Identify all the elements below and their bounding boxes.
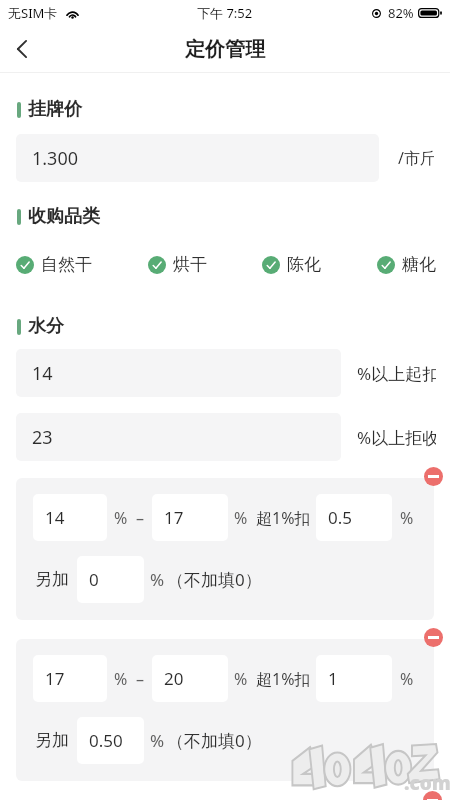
staticText: %	[234, 668, 248, 690]
staticText: （不加填0）	[167, 568, 262, 591]
staticText: 下午 7:52	[197, 4, 253, 22]
staticText: 超1%扣	[256, 668, 311, 690]
staticText: %	[150, 568, 165, 591]
staticText: 82%	[388, 4, 414, 22]
staticText: 另加	[35, 569, 69, 590]
staticText: 水分	[28, 315, 64, 338]
button[interactable]: Remove rule	[423, 791, 442, 800]
staticText: 23	[32, 425, 53, 450]
button[interactable]: 14	[16, 349, 341, 397]
button[interactable]: 0	[77, 556, 144, 603]
staticText: %以上起扣	[357, 362, 436, 385]
staticText: %	[400, 507, 414, 529]
staticText: 收购品类	[28, 205, 100, 228]
button[interactable]: 糖化	[377, 254, 436, 275]
button[interactable]: 17	[33, 655, 107, 702]
button[interactable]: 23	[16, 413, 341, 461]
button[interactable]: 14	[33, 494, 107, 541]
button[interactable]: 20	[152, 655, 228, 702]
button[interactable]: Back	[0, 26, 44, 72]
staticText: 0	[89, 568, 99, 591]
staticText: 超1%扣	[256, 507, 311, 529]
staticText: %以上拒收	[357, 426, 436, 449]
staticText: 陈化	[287, 254, 321, 275]
staticText: %	[400, 668, 414, 690]
button[interactable]: 0.5	[316, 494, 392, 541]
button[interactable]: 1	[316, 655, 392, 702]
staticText: 定价管理	[185, 37, 265, 62]
staticText: 20	[164, 667, 184, 690]
button[interactable]: 陈化	[262, 254, 321, 275]
button[interactable]: Remove rule	[424, 628, 443, 647]
staticText: 无SIM卡	[8, 4, 58, 22]
staticText: 自然干	[41, 254, 92, 275]
staticText: 另加	[35, 730, 69, 751]
button[interactable]: 烘干	[148, 254, 207, 275]
staticText: %	[234, 507, 248, 529]
staticText: /市斤	[398, 147, 434, 169]
staticText: 17	[45, 667, 65, 690]
staticText: %	[114, 668, 128, 690]
staticText: 14	[32, 361, 53, 386]
staticText: （不加填0）	[167, 729, 262, 752]
staticText: 0.5	[328, 506, 353, 529]
staticText: %	[150, 729, 165, 752]
button[interactable]: 17	[152, 494, 228, 541]
staticText: 1	[328, 667, 338, 690]
button[interactable]: 0.50	[77, 717, 144, 764]
staticText: 0.50	[89, 729, 123, 752]
staticText: 14	[45, 506, 65, 529]
button[interactable]: Remove rule	[424, 467, 443, 486]
staticText: 糖化	[402, 254, 436, 275]
staticText: –	[136, 507, 145, 529]
staticText: 烘干	[173, 254, 207, 275]
staticText: 17	[164, 506, 184, 529]
button[interactable]: 自然干	[16, 254, 92, 275]
staticText: 挂牌价	[28, 98, 82, 121]
staticText: %	[114, 507, 128, 529]
staticText: .com	[404, 770, 450, 796]
button[interactable]: 1.300	[16, 134, 379, 182]
staticText: –	[136, 668, 145, 690]
staticText: 1.300	[32, 146, 79, 171]
